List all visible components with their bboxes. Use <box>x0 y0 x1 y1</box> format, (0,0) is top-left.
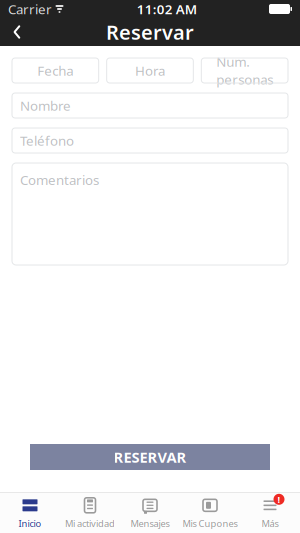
staticText: Nombre <box>20 97 71 114</box>
staticText: Carrier <box>8 0 52 18</box>
staticText: Num. personas <box>216 53 273 88</box>
staticText: RESERVAR <box>113 447 186 467</box>
staticText: Inicio <box>18 517 41 530</box>
button[interactable]: Back <box>0 18 34 46</box>
staticText: Mensajes <box>130 517 169 530</box>
staticText: Mis Cupones <box>182 517 237 530</box>
staticText: ! <box>277 493 280 505</box>
button[interactable]: RESERVAR <box>30 444 270 470</box>
staticText: 11:02 AM <box>137 0 197 18</box>
button[interactable]: Teléfono <box>12 128 288 153</box>
button[interactable]: Hora <box>107 58 193 83</box>
button[interactable]: Fecha <box>12 58 99 83</box>
button[interactable]: Mis Cupones <box>180 493 240 533</box>
button[interactable]: Nombre <box>12 93 288 118</box>
button[interactable]: Mi actividad <box>60 493 120 533</box>
button[interactable]: Comentarios <box>12 163 288 265</box>
button[interactable]: Mensajes <box>120 493 180 533</box>
staticText: Más <box>261 517 278 530</box>
staticText: Teléfono <box>20 132 74 149</box>
staticText: Hora <box>135 62 165 79</box>
staticText: Mi actividad <box>65 517 115 530</box>
button[interactable]: ! <box>240 493 300 533</box>
staticText: Comentarios <box>20 171 99 189</box>
staticText: Reservar <box>106 19 194 45</box>
button[interactable]: Inicio <box>0 493 60 533</box>
staticText: Fecha <box>37 62 73 79</box>
button[interactable]: Num. personas <box>201 58 288 83</box>
